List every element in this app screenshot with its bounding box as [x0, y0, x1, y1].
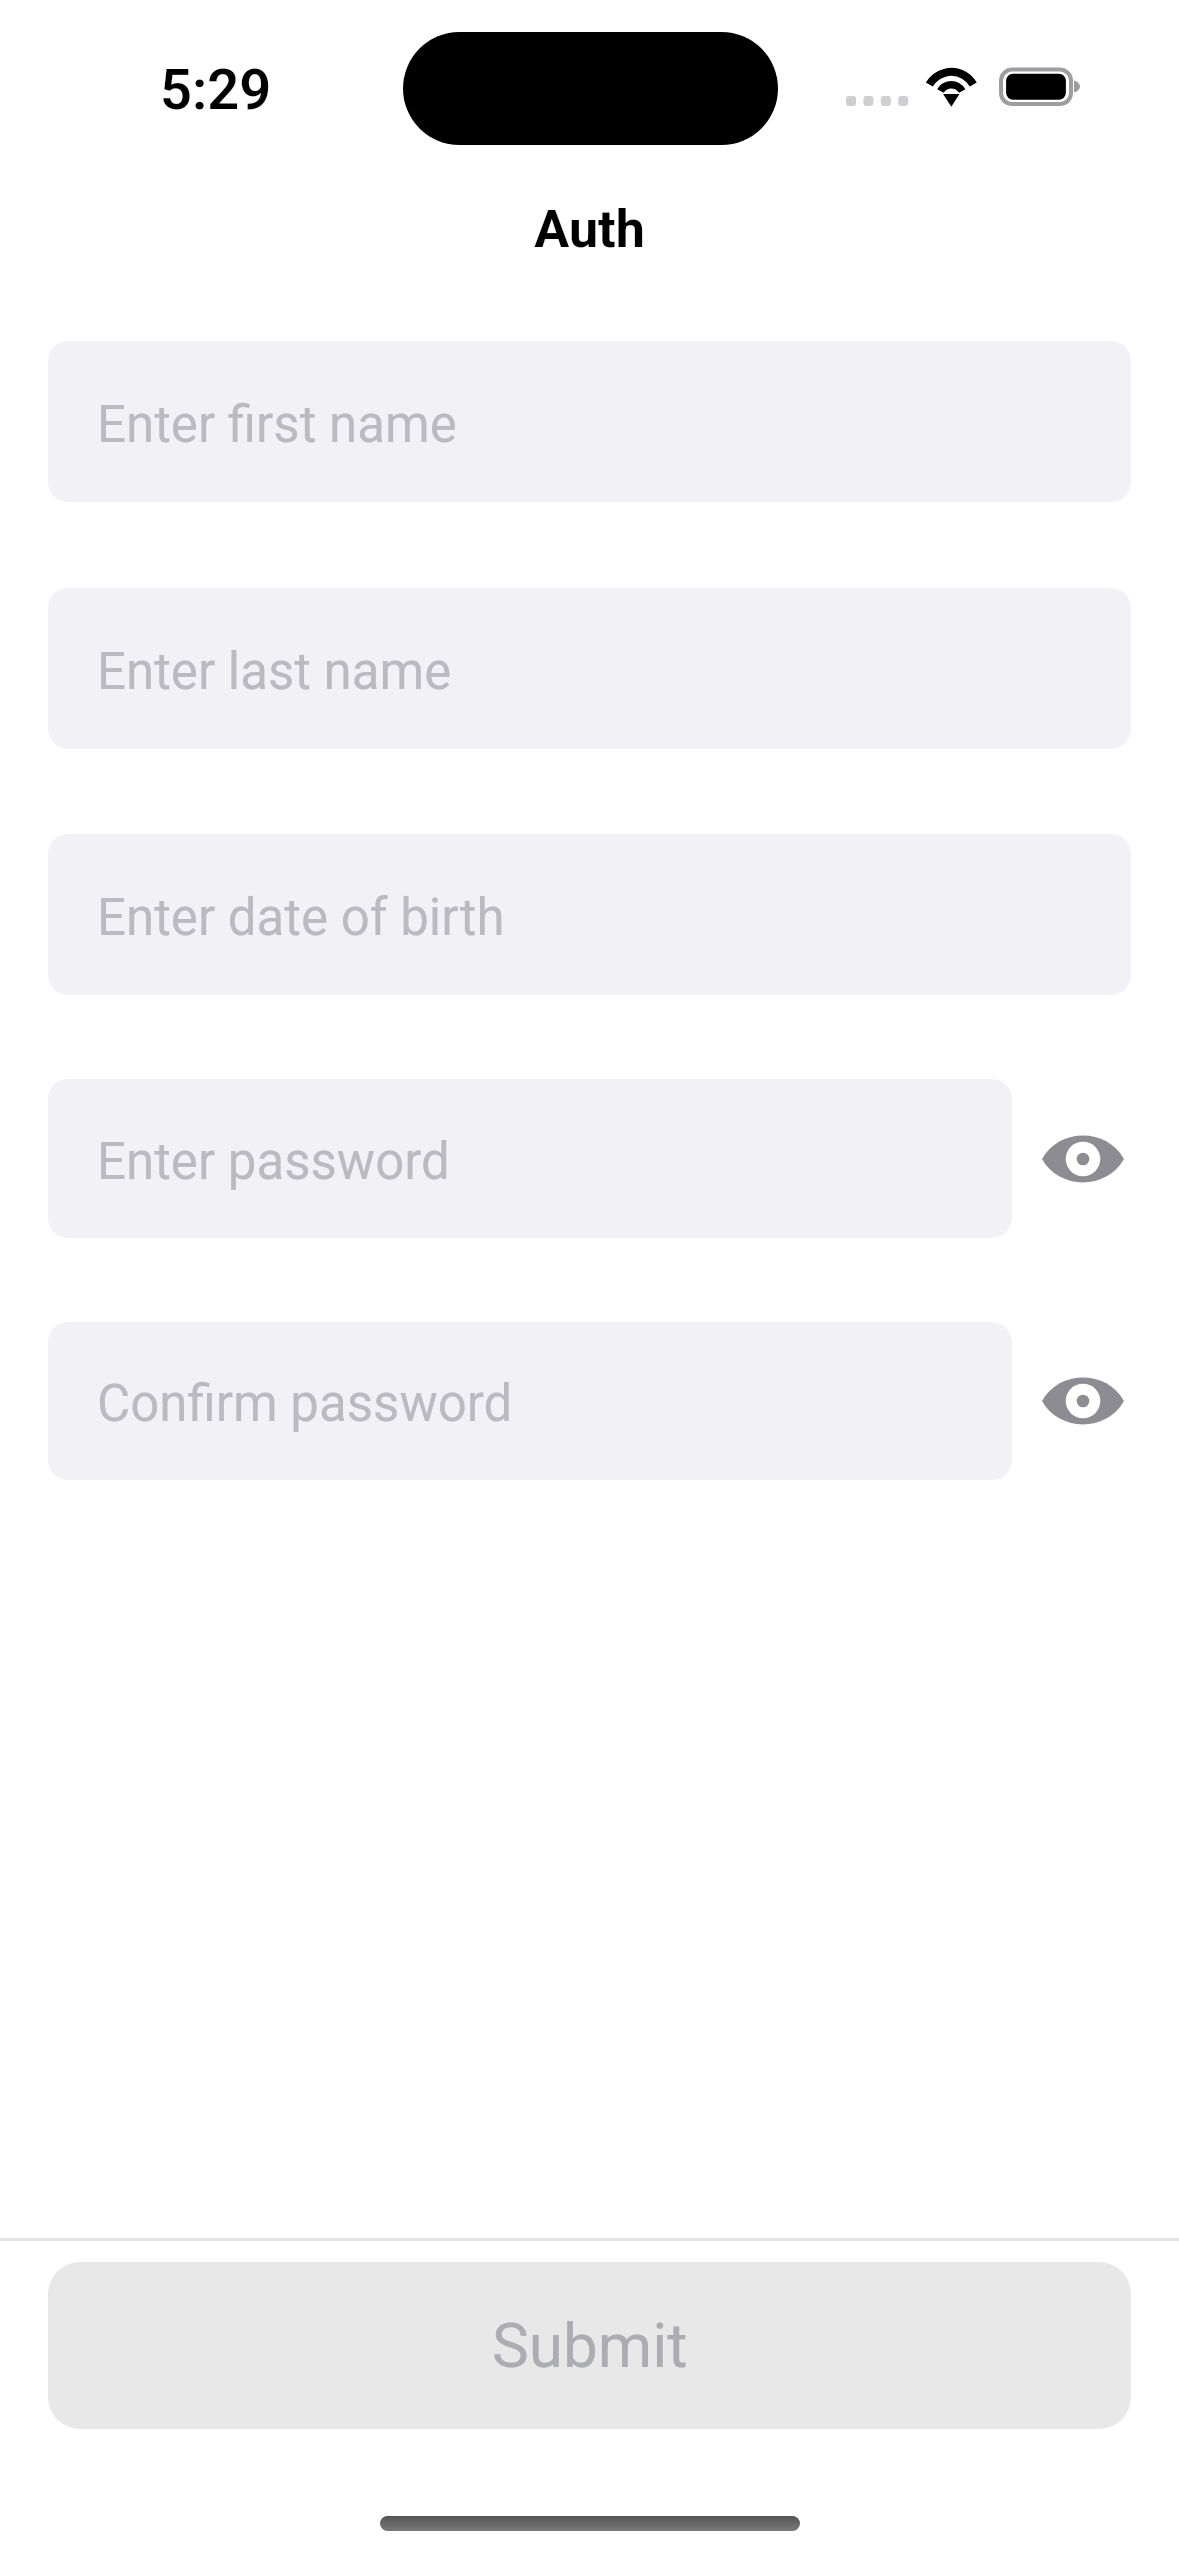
staticText: 5:29 — [160, 57, 272, 123]
staticText: Enter last name — [97, 642, 452, 702]
button[interactable]: Enter last name — [48, 588, 1131, 749]
button[interactable]: Enter date of birth — [48, 834, 1131, 995]
button[interactable]: Toggle password visibility — [1012, 1079, 1131, 1238]
button[interactable]: Submit — [48, 2262, 1131, 2429]
button[interactable]: Confirm password — [48, 1322, 1012, 1480]
staticText: Auth — [534, 199, 645, 260]
staticText: Enter first name — [97, 395, 457, 455]
staticText: Submit — [492, 2309, 688, 2382]
button[interactable]: Toggle password visibility — [1012, 1322, 1131, 1480]
staticText: Enter password — [97, 1132, 450, 1192]
button[interactable]: Enter password — [48, 1079, 1012, 1238]
staticText: Confirm password — [97, 1374, 513, 1434]
staticText: Enter date of birth — [97, 888, 505, 948]
button[interactable]: Enter first name — [48, 341, 1131, 502]
